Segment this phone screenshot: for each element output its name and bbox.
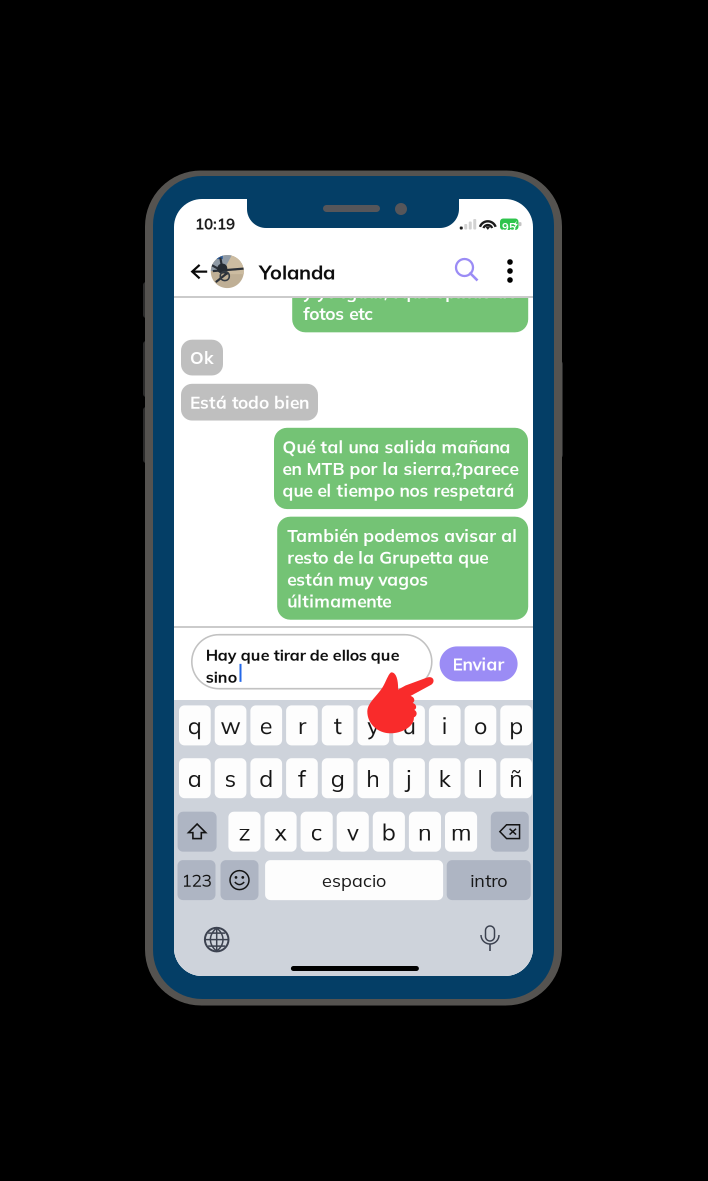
button[interactable]: u <box>393 705 425 745</box>
button[interactable]: d <box>250 758 282 798</box>
button[interactable]: Shift <box>178 812 217 852</box>
button[interactable]: q <box>179 705 211 745</box>
button[interactable]: x <box>264 812 297 852</box>
button[interactable]: g <box>322 758 353 798</box>
button[interactable]: o <box>465 705 496 745</box>
staticText: espacio <box>322 869 386 891</box>
button[interactable]: r <box>286 705 318 745</box>
button[interactable]: p <box>500 705 532 745</box>
staticText: intro <box>470 869 507 891</box>
staticText: v <box>347 817 359 846</box>
button[interactable]: l <box>465 758 496 798</box>
staticText: q <box>188 711 202 740</box>
staticText: Ok <box>190 347 214 368</box>
button[interactable]: c <box>301 812 333 852</box>
button[interactable]: z <box>228 812 260 852</box>
button[interactable]: Dictate <box>479 926 501 953</box>
staticText: y <box>367 711 379 740</box>
button[interactable]: j <box>393 758 425 798</box>
staticText: i <box>442 711 448 740</box>
staticText: Hay que tirar de ellos que sino <box>206 645 400 687</box>
button[interactable]: e <box>250 705 282 745</box>
staticText: o <box>474 711 487 740</box>
button[interactable]: Search <box>456 259 481 284</box>
button[interactable]: b <box>373 812 405 852</box>
button[interactable]: Yolanda <box>259 259 335 285</box>
button[interactable]: a <box>179 758 211 798</box>
button[interactable]: Emoji <box>220 860 258 900</box>
staticText: z <box>238 817 250 846</box>
button[interactable]: Enviar <box>440 646 518 681</box>
button[interactable]: k <box>429 758 461 798</box>
button[interactable]: Back <box>191 264 208 280</box>
staticText: k <box>439 764 451 793</box>
staticText: m <box>451 817 471 846</box>
staticText: Qué tal una salida mañana en MTB por la … <box>282 436 518 501</box>
button[interactable]: Change keyboard <box>205 928 229 952</box>
staticText: Yolanda <box>259 259 335 285</box>
staticText: w <box>220 711 240 740</box>
staticText: b <box>382 817 396 846</box>
button[interactable]: s <box>215 758 246 798</box>
button[interactable]: y <box>357 705 389 745</box>
button[interactable]: ñ <box>500 758 532 798</box>
staticText: Enviar <box>453 653 505 675</box>
button[interactable]: 123 <box>177 860 215 900</box>
button[interactable]: t <box>322 705 353 745</box>
staticText: 10:19 <box>195 214 235 233</box>
staticText: r <box>298 711 306 740</box>
staticText: j <box>406 764 412 793</box>
button[interactable]: i <box>429 705 461 745</box>
staticText: 123 <box>181 869 211 891</box>
button[interactable]: espacio <box>265 860 443 900</box>
staticText: l <box>477 764 483 793</box>
button[interactable]: intro <box>447 860 531 900</box>
button[interactable]: w <box>215 705 246 745</box>
staticText: n <box>418 817 432 846</box>
staticText: c <box>311 817 323 846</box>
staticText: g <box>331 764 345 793</box>
staticText: t <box>334 711 342 740</box>
button[interactable]: f <box>286 758 318 798</box>
staticText: p <box>509 711 523 740</box>
button[interactable]: Contact photo <box>211 255 244 288</box>
button[interactable]: h <box>357 758 389 798</box>
button[interactable]: m <box>445 812 477 852</box>
staticText: d <box>259 764 273 793</box>
staticText: a <box>188 764 202 793</box>
staticText: f <box>298 764 306 793</box>
staticText: También podemos avisar al resto de la Gr… <box>287 525 517 612</box>
button[interactable]: More options <box>503 259 517 283</box>
button[interactable]: v <box>337 812 369 852</box>
staticText: y yo igual, ?que opinas de fotos etc <box>303 281 516 324</box>
staticText: x <box>275 817 287 846</box>
button[interactable]: Delete <box>491 812 529 852</box>
staticText: 95 <box>502 219 516 234</box>
button[interactable]: n <box>409 812 441 852</box>
staticText: s <box>224 764 236 793</box>
staticText: Está todo bien <box>190 391 309 413</box>
staticText: e <box>260 711 273 740</box>
staticText: u <box>403 711 416 740</box>
staticText: ñ <box>509 764 523 793</box>
staticText: h <box>366 764 380 793</box>
